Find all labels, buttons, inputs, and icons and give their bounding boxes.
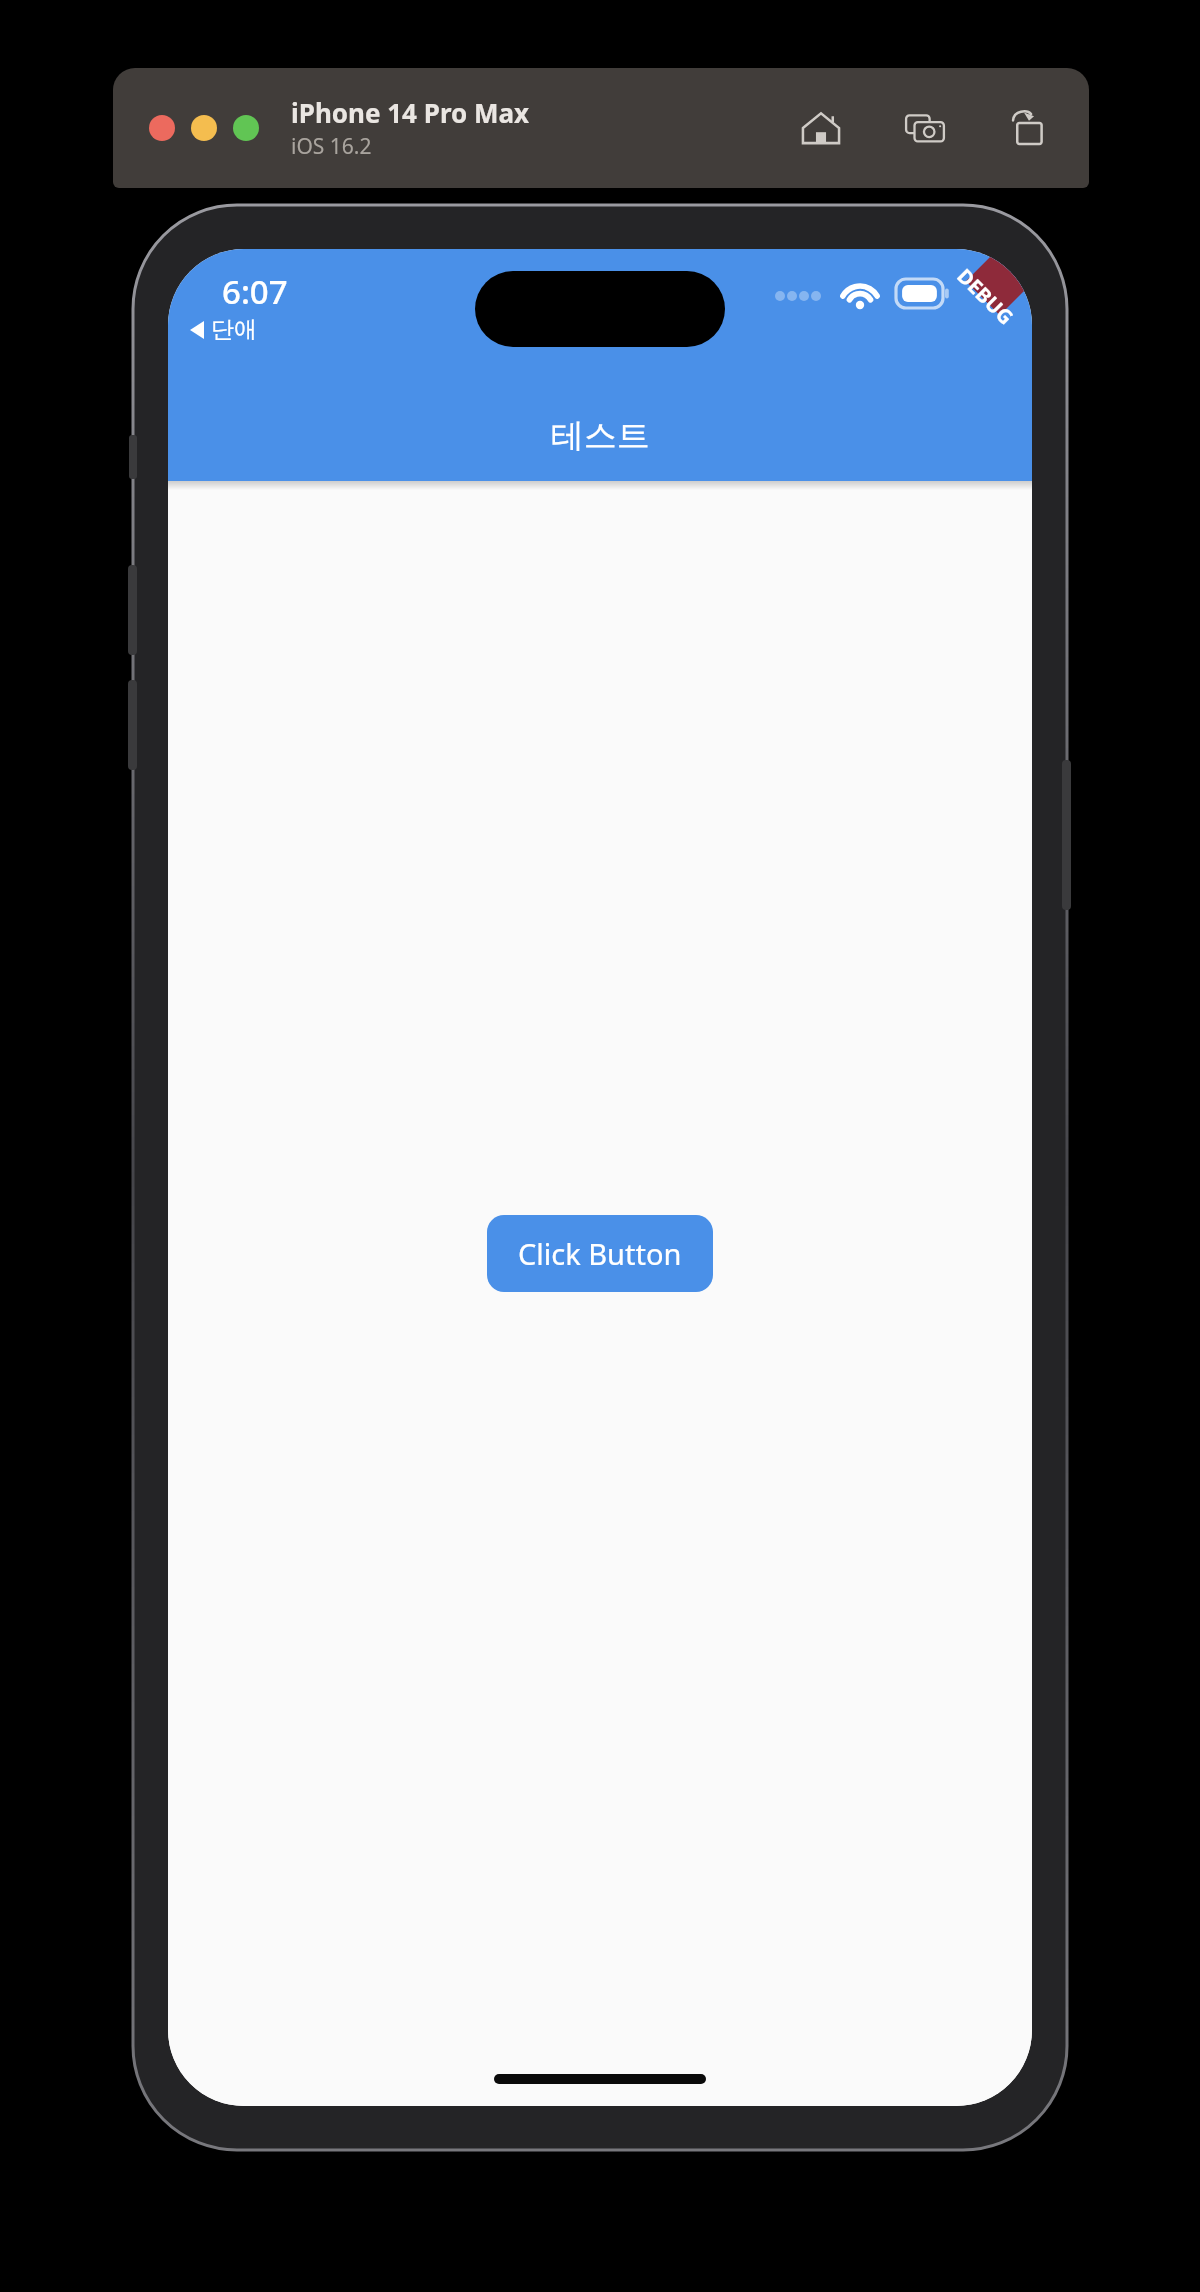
button[interactable]: Screenshot [899,102,951,154]
staticText: 6:07 [222,269,288,314]
button[interactable]: Maximize window [233,115,259,141]
staticText: iOS 16.2 [291,132,372,161]
staticText: DEBUG [952,263,1019,330]
staticText: 테스트 [551,415,650,457]
button[interactable]: Back to 단애 [186,311,261,348]
staticText: Click Button [518,1234,682,1273]
staticText: iPhone 14 Pro Max [291,95,530,130]
button[interactable]: Home [795,102,847,154]
button[interactable]: Minimize window [191,115,217,141]
staticText: 단애 [211,315,257,344]
button[interactable]: Close window [149,115,175,141]
button[interactable]: Click Button [487,1215,713,1292]
button[interactable]: Share [1003,102,1055,154]
